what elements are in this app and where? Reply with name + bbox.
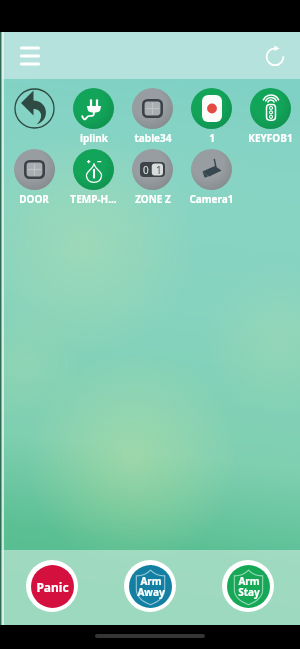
staticText: Arm Away [137,574,165,599]
staticText: 1 [156,163,162,177]
staticText: Arm Stay [238,574,260,599]
staticText: Camera1 [189,192,234,206]
staticText: Panic [36,579,69,595]
staticText: KEYFOB1 [248,131,293,145]
staticText: 1 [209,131,215,145]
button[interactable]: DOOR [4,149,64,206]
staticText: iplink [80,131,108,145]
button[interactable]: Refresh [265,46,285,66]
button[interactable]: Panic [26,560,78,612]
button[interactable]: Back [4,88,64,145]
button[interactable]: 0 [123,149,182,206]
staticText: TEMP-H... [70,192,117,206]
button[interactable]: Camera1 [182,149,241,206]
staticText: 0 [143,163,149,177]
button[interactable]: 1 [182,88,241,145]
button[interactable]: Menu [15,41,45,71]
button[interactable]: iplink [64,88,123,145]
button[interactable]: TEMP-H... [64,149,123,206]
staticText: DOOR [19,192,49,206]
button[interactable]: Arm Away [124,560,176,612]
button[interactable]: Arm Stay [222,560,274,612]
staticText: ZONE Z [135,192,171,206]
button[interactable]: table34 [123,88,182,145]
staticText: table34 [134,131,172,145]
button[interactable]: KEYFOB1 [241,88,300,145]
button[interactable]: Back [14,88,55,129]
